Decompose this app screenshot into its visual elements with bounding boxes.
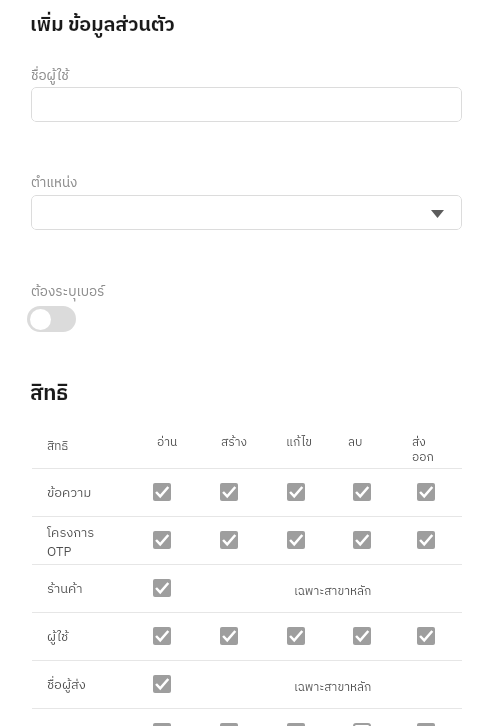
staticText: ข้อความ: [47, 482, 92, 503]
staticText: ลบ: [348, 433, 363, 453]
staticText: สิทธิ: [47, 437, 69, 457]
staticText: อ่าน: [157, 433, 178, 453]
button[interactable]: ชื่อผู้ส่ง: [0, 660, 504, 708]
button[interactable]: รายงาน: [0, 708, 504, 726]
staticText: OTP: [47, 541, 72, 562]
staticText: โครงการ: [47, 522, 95, 543]
staticText: แก้ไข: [286, 433, 312, 453]
staticText: สิทธิ: [30, 377, 69, 411]
button[interactable]: ตำแหน่ง dropdown: [31, 195, 462, 230]
button[interactable]: โครงการ: [0, 516, 504, 564]
button[interactable]: ผู้ใช้: [0, 612, 504, 660]
staticText: ตำแหน่ง: [31, 172, 78, 194]
button[interactable]: ชื่อผู้ใช้ input: [31, 87, 462, 122]
staticText: ต้องระบุเบอร์: [31, 281, 105, 303]
button[interactable]: ร้านค้า: [0, 564, 504, 612]
staticText: ผู้ใช้: [47, 626, 69, 647]
staticText: สร้าง: [221, 433, 248, 453]
staticText: ชื่อผู้ส่ง: [47, 674, 86, 695]
staticText: ส่งออก: [412, 433, 436, 468]
staticText: ร้านค้า: [47, 578, 83, 599]
staticText: เฉพาะสาขาหลัก: [294, 582, 372, 602]
staticText: เฉพาะสาขาหลัก: [294, 678, 372, 698]
staticText: เพิ่ม ข้อมูลส่วนตัว: [30, 9, 175, 42]
button[interactable]: ข้อความ: [0, 468, 504, 516]
staticText: ชื่อผู้ใช้: [31, 65, 69, 87]
button[interactable]: ต้องระบุเบอร์ toggle: [27, 306, 76, 332]
